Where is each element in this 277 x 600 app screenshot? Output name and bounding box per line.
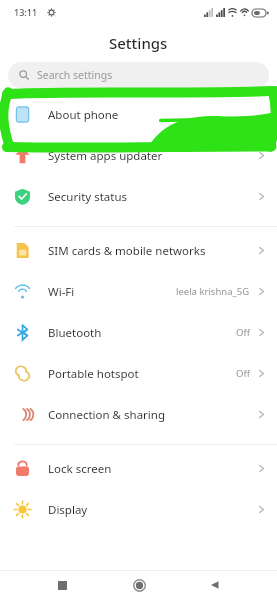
button[interactable]: Recent apps	[47, 570, 77, 600]
other: Wi-Fi	[14, 283, 31, 300]
other: Security status	[14, 188, 31, 205]
button[interactable]: SIM cards and mobile networks	[0, 230, 277, 271]
button[interactable]: Bluetooth	[0, 312, 277, 353]
button[interactable]: Back	[200, 570, 230, 600]
staticText: Off	[236, 367, 250, 380]
staticText: Settings	[109, 33, 168, 53]
other: Bluetooth	[14, 324, 31, 341]
button[interactable]: Connection and sharing	[0, 394, 277, 435]
button[interactable]: System apps updater	[0, 135, 277, 176]
button[interactable]: Display	[0, 489, 277, 530]
staticText: Search settings	[37, 68, 113, 82]
other: Lock screen	[14, 460, 31, 477]
other: Connection and sharing	[14, 406, 31, 423]
staticText: SIM cards & mobile networks	[48, 243, 206, 259]
staticText: Portable hotspot	[48, 366, 139, 382]
button[interactable]: Search settings	[8, 62, 269, 88]
button[interactable]: Home	[124, 570, 154, 600]
button[interactable]: Wi-Fi	[0, 271, 277, 312]
staticText: Display	[48, 502, 88, 518]
button[interactable]: Lock screen	[0, 448, 277, 489]
other: Portable hotspot	[14, 365, 31, 382]
button[interactable]: Portable hotspot	[0, 353, 277, 394]
staticText: Wi-Fi	[48, 284, 75, 300]
other: About phone	[14, 106, 31, 123]
button[interactable]: About phone	[0, 94, 277, 135]
staticText: Bluetooth	[48, 325, 102, 341]
other: Display	[14, 501, 31, 518]
staticText: Security status	[48, 189, 128, 205]
other: System apps updater	[14, 147, 31, 164]
staticText: About phone	[48, 107, 119, 123]
staticText: Connection & sharing	[48, 407, 165, 423]
staticText: 13:11	[14, 6, 38, 18]
other: SIM cards and mobile networks	[14, 242, 31, 259]
staticText: leela krishna_5G	[176, 285, 250, 298]
staticText: Lock screen	[48, 461, 112, 477]
staticText: Off	[236, 326, 250, 339]
button[interactable]: Security status	[0, 176, 277, 217]
staticText: System apps updater	[48, 148, 163, 164]
